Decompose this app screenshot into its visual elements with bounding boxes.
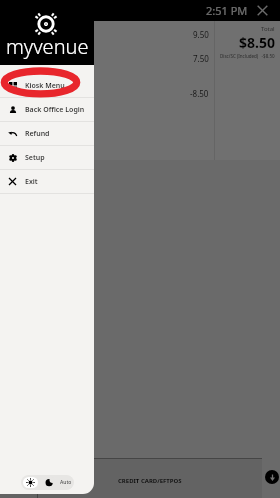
staticText: 2:51 PM — [206, 3, 248, 18]
staticText: Disc/SC (Included) -$8.50 — [220, 53, 275, 59]
staticText: Refund — [25, 129, 50, 139]
staticText: -8.50 — [190, 88, 209, 99]
staticText: $8.50 — [239, 33, 275, 52]
button[interactable]: Kiosk Menu — [0, 74, 94, 97]
button[interactable]: Back Office Login — [0, 98, 94, 121]
button[interactable]: Setup — [0, 146, 94, 169]
button[interactable]: Auto — [58, 475, 74, 490]
staticText: 7.50 — [193, 53, 209, 64]
staticText: Back Office Login — [25, 105, 85, 115]
staticText: 9.50 — [193, 29, 209, 40]
button[interactable]: Dark theme — [40, 475, 58, 490]
staticText: CREDIT CARD/EFTPOS — [118, 477, 182, 485]
staticText: Total — [261, 25, 275, 33]
staticText: Exit — [25, 177, 38, 187]
staticText: Setup — [25, 153, 45, 163]
button[interactable]: Exit — [0, 170, 94, 193]
button[interactable]: CREDIT CARD/EFTPOS — [38, 459, 262, 498]
staticText: myvenue — [6, 33, 89, 60]
button[interactable]: Close — [257, 5, 268, 16]
button[interactable]: Refund — [0, 122, 94, 145]
staticText: Auto — [60, 479, 72, 486]
staticText: Kiosk Menu — [25, 81, 65, 91]
button[interactable]: Light theme — [23, 477, 38, 488]
button[interactable]: Cash — [0, 459, 37, 498]
button[interactable]: Scroll down — [265, 470, 279, 484]
